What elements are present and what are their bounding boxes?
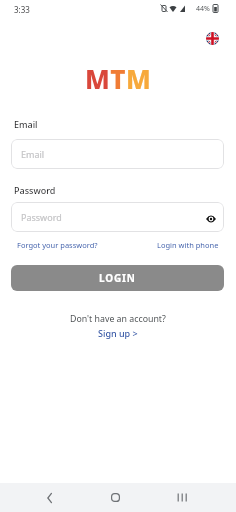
staticText: Password xyxy=(14,184,56,196)
staticText: MTM xyxy=(85,61,152,96)
button[interactable]: Email xyxy=(11,139,224,169)
button[interactable]: Login with phone xyxy=(157,240,219,250)
button[interactable]: Password xyxy=(11,202,224,232)
staticText: Password xyxy=(21,211,62,223)
button[interactable] xyxy=(111,493,120,502)
button[interactable] xyxy=(204,212,218,226)
staticText: Forgot your password? xyxy=(17,240,98,250)
button[interactable] xyxy=(44,492,56,504)
button[interactable]: Sign up > xyxy=(98,327,138,339)
button[interactable]: LOGIN xyxy=(11,265,224,291)
staticText: Don't have an account? xyxy=(70,313,166,325)
button[interactable]: Forgot your password? xyxy=(17,240,98,250)
staticText: Email xyxy=(14,118,38,130)
staticText: 44% xyxy=(196,4,210,14)
staticText: Sign up > xyxy=(98,327,138,339)
button[interactable] xyxy=(206,32,219,45)
staticText: Email xyxy=(21,148,45,160)
staticText: 3:33 xyxy=(14,4,30,15)
button[interactable] xyxy=(177,493,188,502)
staticText: Login with phone xyxy=(157,240,219,250)
staticText: LOGIN xyxy=(99,271,136,285)
